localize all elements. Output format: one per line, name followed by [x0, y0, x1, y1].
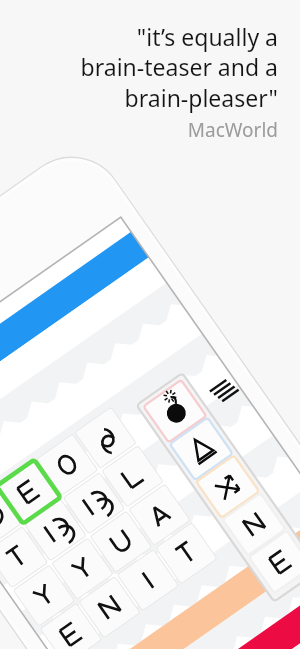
staticText: "it’s equally a brain-teaser and a brain… — [14, 21, 278, 114]
staticText: MacWorld — [14, 117, 278, 143]
